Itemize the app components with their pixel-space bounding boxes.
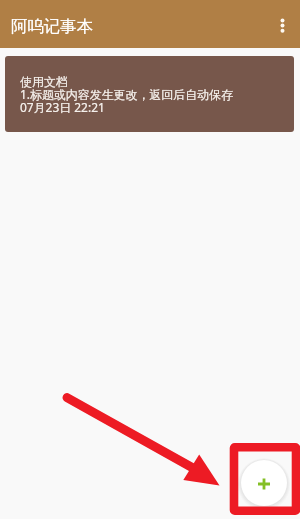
button[interactable]: More options [260, 0, 300, 48]
button[interactable]: New note [241, 460, 287, 506]
staticText: 阿呜记事本 [11, 16, 93, 37]
staticText: 使用文档 1.标题或内容发生更改，返回后自动保存 07月23日 22:21 [20, 74, 233, 116]
button[interactable]: 使用文档 1.标题或内容发生更改，返回后自动保存 07月23日 22:21 [5, 56, 294, 132]
